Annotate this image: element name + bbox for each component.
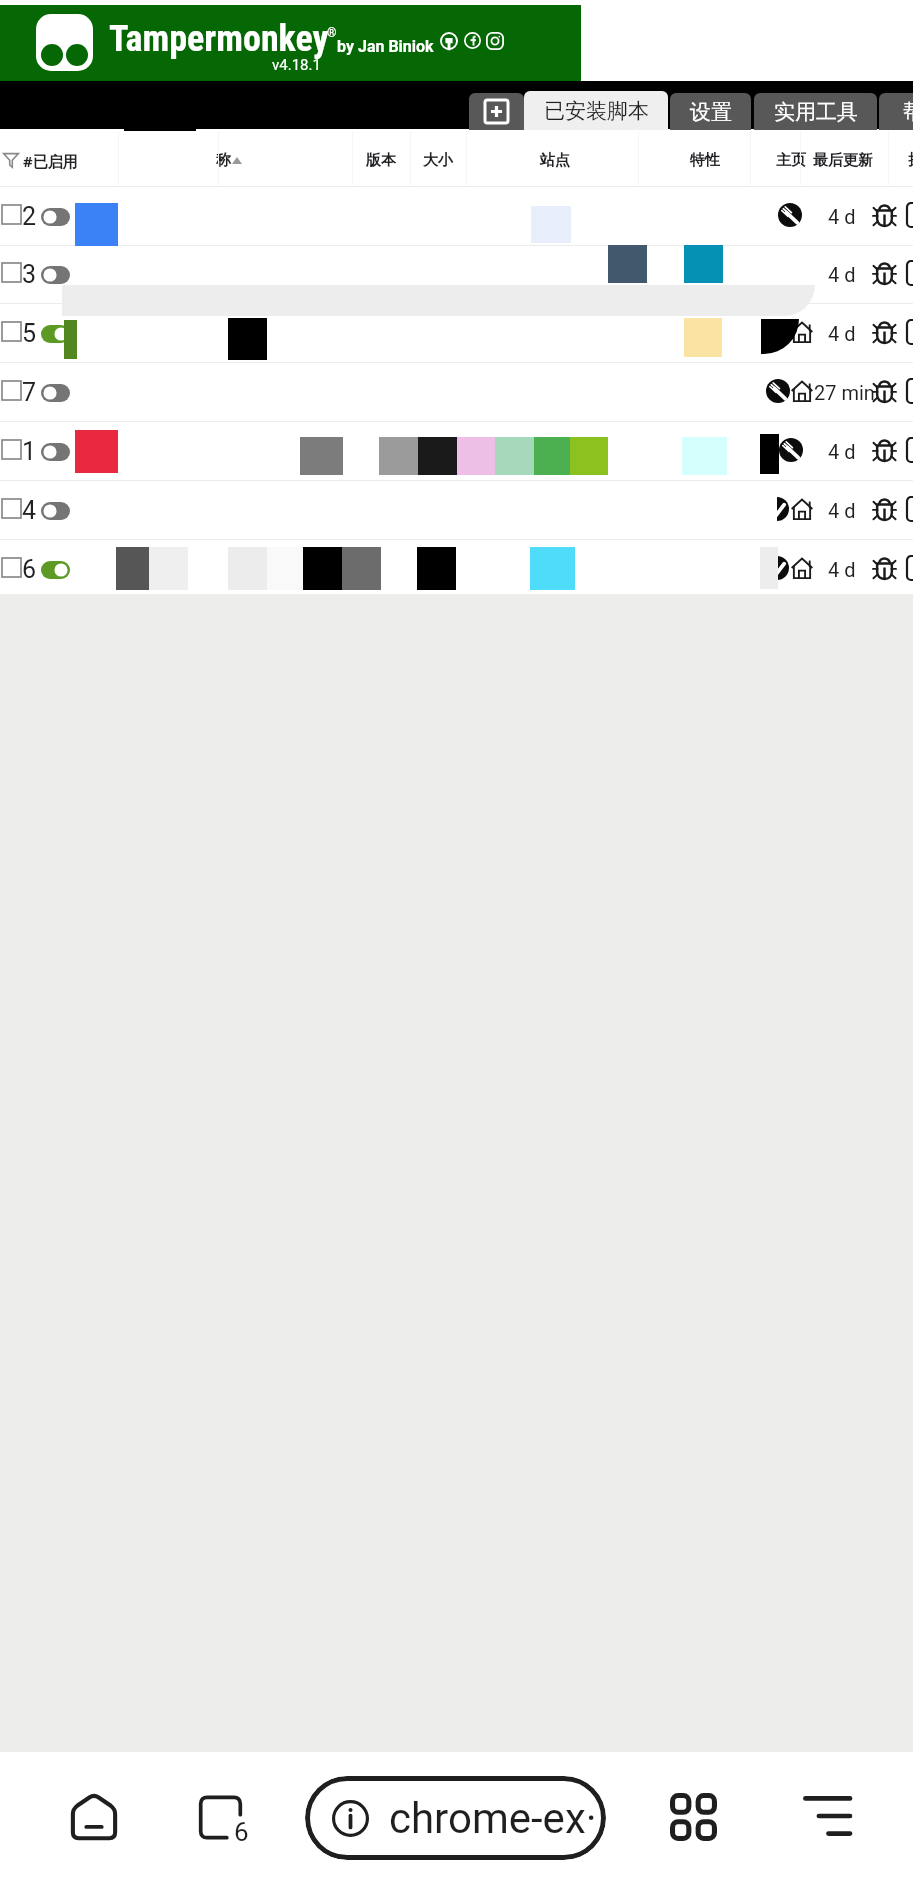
button[interactable]: 1	[0, 422, 913, 480]
staticText: 6	[22, 555, 37, 584]
staticText: 特性	[690, 151, 720, 170]
staticText: 站点	[540, 151, 570, 170]
staticText: by Jan Biniok	[337, 37, 434, 56]
staticText: 最后更新	[813, 151, 873, 170]
button[interactable]: Menu	[781, 1776, 877, 1860]
button[interactable]: 2	[0, 187, 913, 245]
staticText: Tampermonkey	[109, 18, 329, 60]
button[interactable]: New script	[469, 93, 524, 130]
staticText: 设置	[690, 99, 732, 125]
staticText: 4 d	[828, 263, 856, 286]
staticText: 大小	[423, 151, 453, 170]
staticText: 已安装脚本	[544, 98, 649, 124]
staticText: 7	[22, 378, 37, 407]
staticText: 4 d	[828, 558, 856, 581]
staticText: chrome-ex·	[389, 1794, 597, 1843]
staticText: ®	[327, 26, 337, 40]
staticText: #已启用	[23, 151, 78, 171]
button[interactable]: 已安装脚本	[524, 91, 668, 130]
staticText: 版本	[366, 151, 396, 170]
button[interactable]: 4	[0, 481, 913, 539]
staticText: 操	[908, 151, 913, 170]
staticText: 5	[22, 319, 37, 348]
staticText: 主页	[776, 151, 806, 170]
button[interactable]: 实用工具	[754, 93, 877, 130]
staticText: 称	[216, 151, 231, 170]
button[interactable]: 6	[0, 540, 913, 598]
staticText: 4	[22, 496, 37, 525]
staticText: 4 d	[828, 499, 856, 522]
staticText: 帮助	[903, 99, 913, 125]
button[interactable]: 帮助	[879, 93, 913, 130]
staticText: 4 d	[828, 322, 856, 345]
button[interactable]: 7	[0, 363, 913, 421]
button[interactable]: Apps	[646, 1776, 742, 1860]
staticText: v4.18.1	[272, 56, 321, 74]
staticText: 4 d	[828, 205, 856, 228]
staticText: 3	[22, 260, 37, 289]
button[interactable]: 5	[0, 304, 913, 362]
staticText: 2	[22, 202, 37, 231]
staticText: 27 min	[814, 381, 875, 404]
staticText: 实用工具	[774, 99, 858, 125]
staticText: 1	[22, 437, 37, 466]
button[interactable]: 设置	[670, 93, 751, 130]
button[interactable]: 3	[0, 245, 913, 303]
button[interactable]: Home	[46, 1776, 142, 1860]
button[interactable]: chrome-ex·	[305, 1776, 606, 1860]
staticText: 6	[234, 1817, 249, 1847]
staticText: 4 d	[828, 440, 856, 463]
button[interactable]: Tabs, 6 open	[178, 1776, 274, 1860]
